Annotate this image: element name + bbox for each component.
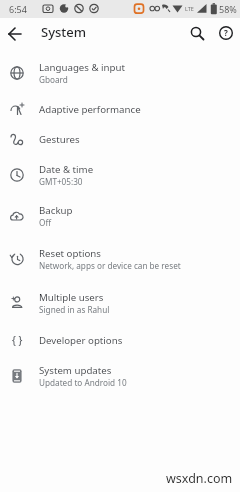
staticText: System — [41, 23, 87, 41]
staticText: Adaptive performance — [39, 103, 141, 116]
staticText: Multiple users — [39, 291, 104, 304]
button[interactable]: Date & time — [0, 153, 240, 196]
staticText: System updates — [39, 364, 112, 377]
button[interactable] — [4, 23, 26, 45]
staticText: 58% — [219, 3, 237, 15]
button[interactable] — [186, 22, 210, 46]
staticText: Signed in as Rahul — [39, 304, 110, 315]
button[interactable]: ? — [215, 22, 239, 46]
staticText: Developer options — [39, 334, 123, 347]
staticText: wsxdn.com — [166, 470, 233, 487]
button[interactable]: Gestures — [0, 124, 240, 154]
staticText: Off — [39, 217, 52, 228]
button[interactable]: Languages & input — [0, 51, 240, 94]
staticText: 6:54 — [9, 3, 27, 15]
staticText: { } — [12, 333, 23, 347]
staticText: Date & time — [39, 163, 94, 176]
staticText: Updated to Android 10 — [39, 377, 127, 388]
staticText: Gboard — [39, 74, 68, 85]
button[interactable]: Backup — [0, 194, 240, 237]
staticText: ? — [224, 27, 228, 38]
button[interactable]: System updates — [0, 354, 240, 397]
staticText: Gestures — [39, 133, 80, 146]
staticText: GMT+05:30 — [39, 176, 83, 187]
staticText: Backup — [39, 204, 73, 217]
staticText: Languages & input — [39, 61, 125, 74]
button[interactable]: Adaptive performance — [0, 94, 240, 124]
staticText: LTE — [185, 5, 194, 12]
button[interactable]: { } — [0, 325, 240, 355]
staticText: Reset options — [39, 247, 101, 260]
button[interactable]: Multiple users — [0, 281, 240, 324]
staticText: Network, apps or device can be reset — [39, 260, 181, 271]
button[interactable]: Reset options — [0, 237, 240, 280]
